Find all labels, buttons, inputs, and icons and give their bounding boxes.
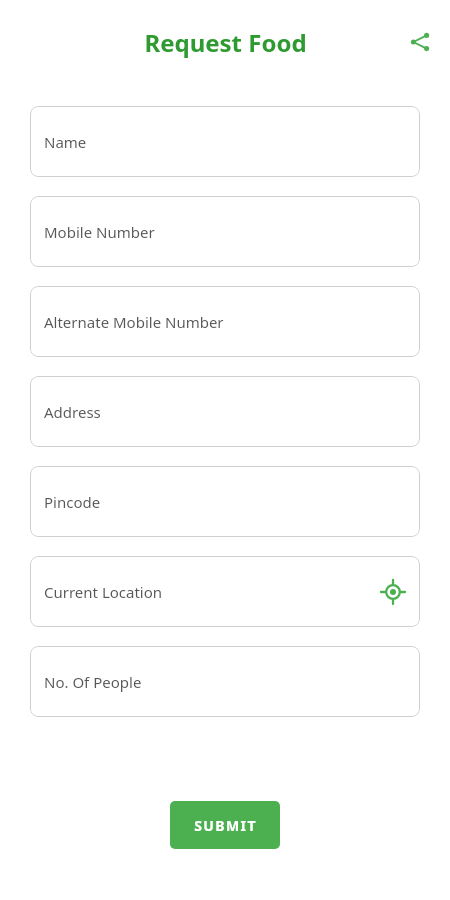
button[interactable]: Mobile Number [30, 196, 420, 267]
staticText: Address [44, 402, 101, 422]
button[interactable]: Use current location [380, 579, 406, 605]
button[interactable]: SUBMIT [170, 801, 280, 849]
button[interactable]: Name [30, 106, 420, 177]
staticText: SUBMIT [194, 816, 257, 835]
button[interactable]: No. Of People [30, 646, 420, 717]
button[interactable]: Share [400, 22, 440, 62]
staticText: Request Food [144, 26, 307, 59]
button[interactable]: Pincode [30, 466, 420, 537]
staticText: Name [44, 132, 87, 152]
staticText: Mobile Number [44, 222, 155, 242]
staticText: Current Location [44, 582, 163, 602]
button[interactable]: Current Location [30, 556, 420, 627]
staticText: Alternate Mobile Number [44, 312, 224, 332]
staticText: No. Of People [44, 672, 142, 692]
staticText: Pincode [44, 492, 101, 512]
button[interactable]: Address [30, 376, 420, 447]
button[interactable]: Alternate Mobile Number [30, 286, 420, 357]
